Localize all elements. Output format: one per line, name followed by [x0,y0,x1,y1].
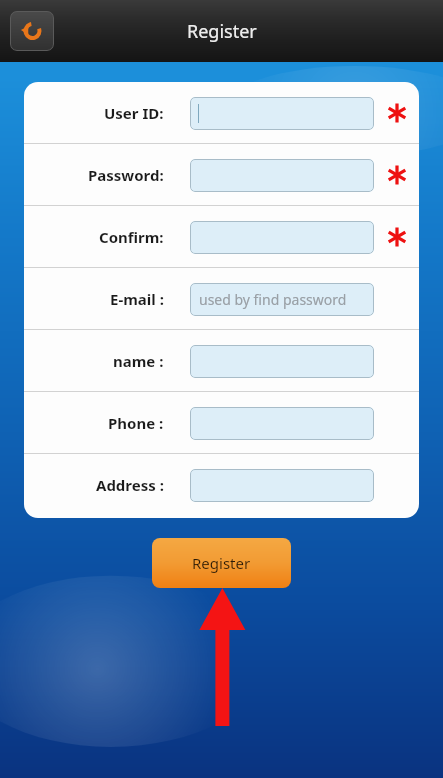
button[interactable]: Confirm: [24,206,419,268]
staticText: Register [187,19,257,44]
staticText: Phone : [108,413,164,433]
staticText: Address : [96,475,164,495]
button[interactable]: User ID: [24,82,419,144]
button[interactable]: Password: [24,144,419,206]
staticText: name : [113,351,164,371]
staticText: E-mail : [110,289,164,309]
staticText: User ID: [104,103,164,123]
button[interactable]: name : [24,330,419,392]
staticText: Register [192,553,251,573]
staticText: Password: [88,165,164,185]
button[interactable]: E-mail : [24,268,419,330]
button[interactable]: Address : [24,454,419,516]
button[interactable]: Phone : [24,392,419,454]
button[interactable]: Back [10,11,54,51]
button[interactable]: Register [152,538,291,588]
staticText: Confirm: [99,227,164,247]
staticText: used by find password [199,290,347,309]
